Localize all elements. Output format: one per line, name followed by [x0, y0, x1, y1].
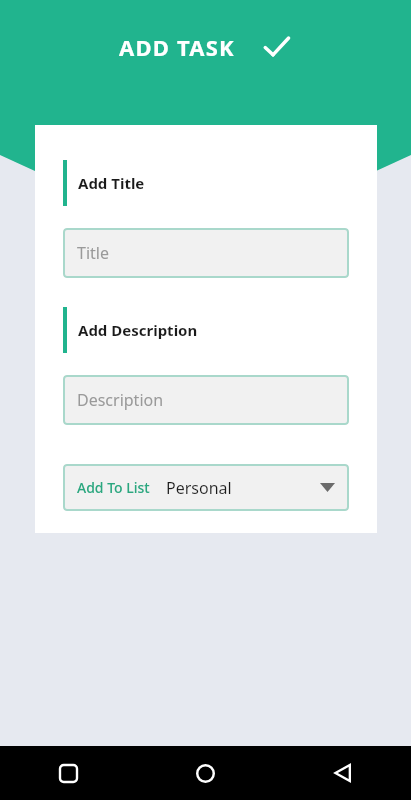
button[interactable]: Description: [63, 375, 349, 425]
staticText: Personal: [166, 477, 232, 499]
staticText: Add Description: [78, 320, 198, 340]
button[interactable]: Back: [274, 746, 411, 800]
staticText: Description: [77, 389, 164, 411]
staticText: Add Title: [78, 173, 145, 193]
button[interactable]: Home: [137, 746, 274, 800]
staticText: Add To List: [77, 478, 150, 497]
button[interactable]: Add To List: [63, 464, 349, 511]
button[interactable]: Save task: [259, 30, 293, 64]
button[interactable]: Recent apps: [0, 746, 137, 800]
staticText: ADD TASK: [119, 32, 235, 62]
button[interactable]: Title: [63, 228, 349, 278]
staticText: Title: [77, 242, 109, 264]
